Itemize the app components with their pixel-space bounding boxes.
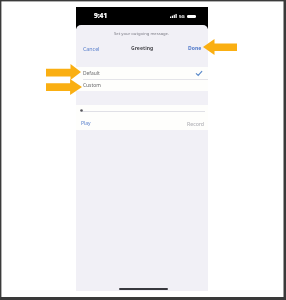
staticText: Greeting [131, 45, 154, 52]
button[interactable]: Callout arrow [46, 79, 82, 95]
button[interactable]: Callout arrow [46, 64, 81, 80]
staticText: 5G [179, 14, 185, 20]
button[interactable]: Done [188, 45, 202, 52]
other: Selected [196, 71, 202, 76]
staticText: Custom [83, 82, 101, 89]
staticText: Set your outgoing message. [114, 31, 170, 37]
button[interactable]: Play [81, 120, 91, 127]
button[interactable]: Default [76, 67, 208, 79]
staticText: Default [83, 70, 100, 77]
button[interactable]: Callout arrow [203, 39, 237, 55]
button[interactable]: Record [187, 120, 205, 127]
other: Playback position [80, 109, 83, 112]
button[interactable]: Cancel [83, 45, 100, 52]
staticText: 9:41 [94, 11, 108, 20]
button[interactable]: Custom [76, 79, 208, 91]
